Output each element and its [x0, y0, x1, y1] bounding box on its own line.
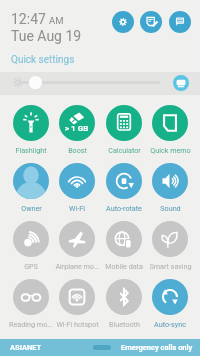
button[interactable]: Airplane mo...	[54, 221, 100, 270]
button[interactable]: Settings	[112, 11, 134, 33]
button[interactable]: Notifications	[169, 11, 191, 33]
button[interactable]: Wi-Fi hotspot	[54, 279, 100, 328]
staticText: ASIANET	[10, 343, 42, 352]
button[interactable]: Auto brightness	[173, 75, 189, 91]
staticText: Quick memo	[150, 146, 191, 154]
staticText: Auto-sync	[154, 320, 186, 328]
staticText: AM	[49, 15, 64, 26]
button[interactable]: GPS	[8, 221, 54, 270]
button[interactable]: Wi-Fi	[54, 163, 100, 212]
staticText: 12:47	[11, 11, 46, 27]
staticText: Wi-Fi	[69, 204, 85, 212]
button[interactable]: Bluetooth	[101, 279, 147, 328]
button[interactable]: Calculator	[101, 105, 147, 154]
button[interactable]: > 1 GB	[54, 105, 100, 154]
staticText: GPS	[24, 262, 38, 270]
staticText: Flashlight	[15, 146, 47, 154]
button[interactable]: Auto-sync	[147, 279, 193, 328]
button[interactable]	[0, 72, 200, 95]
staticText: Owner	[21, 204, 42, 212]
button[interactable]: Auto-rotate	[101, 163, 147, 212]
staticText: Wi-Fi hotspot	[56, 320, 99, 328]
staticText: Emergency calls only	[121, 343, 193, 352]
staticText: Reading mo...	[9, 320, 53, 328]
staticText: Smart saving	[149, 262, 192, 270]
button[interactable]: Smart saving	[147, 221, 193, 270]
button[interactable]: Reading mo...	[8, 279, 54, 328]
staticText: Calculator	[108, 146, 141, 154]
staticText: Tue Aug 19	[11, 28, 82, 44]
button[interactable]: Sound	[147, 163, 193, 212]
button[interactable]: Mobile data	[101, 221, 147, 270]
button[interactable]: Owner	[8, 163, 54, 212]
button[interactable]: Quick memo	[147, 105, 193, 154]
staticText: > 1 GB	[65, 124, 89, 133]
staticText: Airplane mo...	[55, 262, 100, 270]
staticText: Mobile data	[105, 262, 143, 270]
button[interactable]: Flashlight	[8, 105, 54, 154]
staticText: Quick settings	[11, 54, 75, 66]
staticText: Auto-rotate	[106, 204, 142, 212]
button[interactable]: Edit	[140, 11, 162, 33]
staticText: Bluetooth	[109, 320, 140, 328]
staticText: Boost	[68, 146, 87, 154]
staticText: Sound	[160, 204, 181, 212]
